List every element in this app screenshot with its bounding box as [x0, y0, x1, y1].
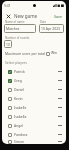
button[interactable]: Patrick: [4, 67, 64, 76]
button[interactable]: Daniel: [4, 85, 64, 94]
button[interactable]: Isabelle: [4, 103, 64, 112]
staticText: Greg: [14, 78, 22, 83]
staticText: Simon: [14, 139, 25, 144]
button[interactable]: Win min: [45, 50, 63, 56]
button[interactable]: Pandora: [4, 130, 64, 139]
staticText: 10: [6, 42, 10, 47]
staticText: Isabelle: [14, 105, 27, 110]
button[interactable]: Greg: [4, 76, 64, 85]
button[interactable]: Matches: [4, 24, 36, 33]
staticText: Maximum score per total: [5, 51, 45, 56]
staticText: Patrick: [14, 69, 25, 74]
staticText: Daniel: [14, 87, 25, 92]
button[interactable]: Close: [5, 13, 12, 20]
button[interactable]: Save: [52, 13, 64, 20]
staticText: Number of rounds: [5, 36, 30, 39]
staticText: Kevin: [14, 96, 23, 101]
button[interactable]: 10 Apr 2023: [39, 24, 64, 33]
button[interactable]: Isabella: [4, 112, 64, 121]
staticText: Select players: [5, 60, 27, 65]
staticText: Save: [54, 14, 62, 19]
staticText: 10 Apr 2023: [41, 26, 61, 31]
button[interactable]: 10: [4, 40, 12, 48]
staticText: Matches: [6, 26, 20, 31]
staticText: Angel: [14, 123, 24, 128]
staticText: Isabella: [14, 114, 27, 119]
staticText: Name of game: [5, 20, 25, 23]
button[interactable]: Kevin: [4, 94, 64, 103]
staticText: Date: [40, 20, 47, 23]
staticText: Pandora: [14, 132, 28, 137]
staticText: New game: [14, 13, 38, 19]
button[interactable]: Simon: [4, 139, 64, 144]
button[interactable]: Angel: [4, 121, 64, 130]
staticText: 9:41: [4, 3, 11, 8]
staticText: Win min: [51, 50, 63, 56]
